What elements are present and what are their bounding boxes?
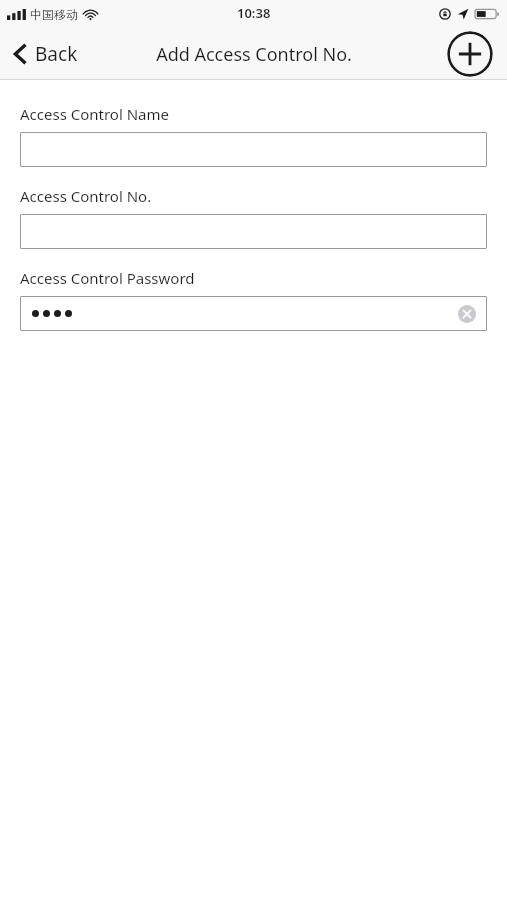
staticText: 10:38 bbox=[237, 4, 271, 22]
button[interactable]: Add bbox=[447, 31, 493, 77]
button[interactable] bbox=[20, 214, 487, 249]
button[interactable] bbox=[20, 132, 487, 167]
staticText: Access Control No. bbox=[20, 186, 152, 206]
button[interactable]: Back bbox=[0, 35, 90, 73]
staticText: Access Control Password bbox=[20, 268, 195, 288]
staticText: Back bbox=[35, 41, 78, 67]
staticText: Access Control Name bbox=[20, 104, 169, 124]
button[interactable]: Clear text bbox=[20, 296, 487, 331]
staticText: Add Access Control No. bbox=[156, 42, 352, 67]
staticText: 中国移动 bbox=[30, 7, 78, 22]
button[interactable]: Clear text bbox=[457, 304, 477, 324]
